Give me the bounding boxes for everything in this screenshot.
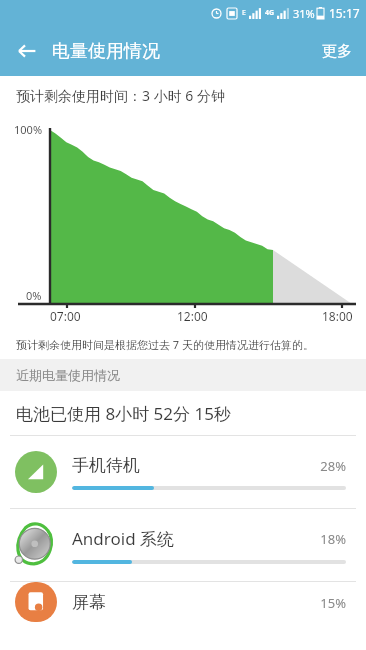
staticText: 预计剩余使用时间：3 小时 6 分钟 (16, 86, 225, 105)
staticText: 电池已使用 8小时 52分 15秒 (16, 402, 231, 425)
button[interactable]: 手机待机 (0, 436, 366, 508)
staticText: 15:17 (329, 5, 360, 21)
staticText: 手机待机 (72, 455, 320, 476)
staticText: 18% (320, 530, 346, 548)
button[interactable]: 更多 (308, 32, 366, 71)
staticText: 近期电量使用情况 (16, 367, 120, 383)
button[interactable]: 屏幕 (0, 582, 366, 622)
staticText: 更多 (322, 42, 352, 61)
staticText: 电量使用情况 (52, 40, 160, 63)
staticText: 18:00 (322, 308, 353, 324)
staticText: 屏幕 (72, 592, 320, 613)
staticText: Android 系统 (72, 527, 320, 550)
staticText: 15% (320, 594, 346, 612)
staticText: 4G (265, 8, 275, 18)
staticText: 0% (26, 288, 42, 303)
staticText: 100% (14, 122, 43, 137)
button[interactable]: Android 系统 (0, 509, 366, 581)
staticText: 31% (293, 6, 315, 21)
staticText: 12:00 (177, 308, 208, 324)
staticText: 07:00 (50, 308, 81, 324)
staticText: 预计剩余使用时间是根据您过去 7 天的使用情况进行估算的。 (16, 337, 315, 352)
button[interactable]: Back (8, 32, 46, 70)
staticText: E (242, 8, 246, 18)
staticText: 28% (320, 457, 346, 475)
